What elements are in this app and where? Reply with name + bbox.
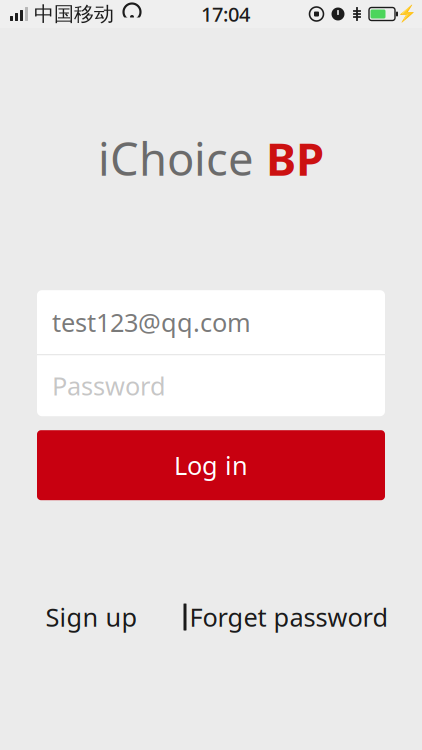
button[interactable]: Sign up — [33, 594, 149, 640]
staticText: Sign up — [45, 600, 137, 634]
staticText: iChoice — [98, 128, 266, 188]
button[interactable]: Forget password — [186, 594, 388, 640]
staticText: ⚡ — [397, 5, 417, 23]
button[interactable]: Log in — [37, 430, 385, 500]
staticText: 中国移动 — [34, 2, 114, 26]
staticText: Password — [52, 369, 166, 402]
staticText: BP — [266, 128, 324, 188]
staticText: Log in — [174, 448, 248, 482]
staticText: Forget password — [189, 600, 388, 634]
staticText: 17:04 — [201, 1, 250, 27]
staticText: test123@qq.com — [52, 305, 251, 339]
